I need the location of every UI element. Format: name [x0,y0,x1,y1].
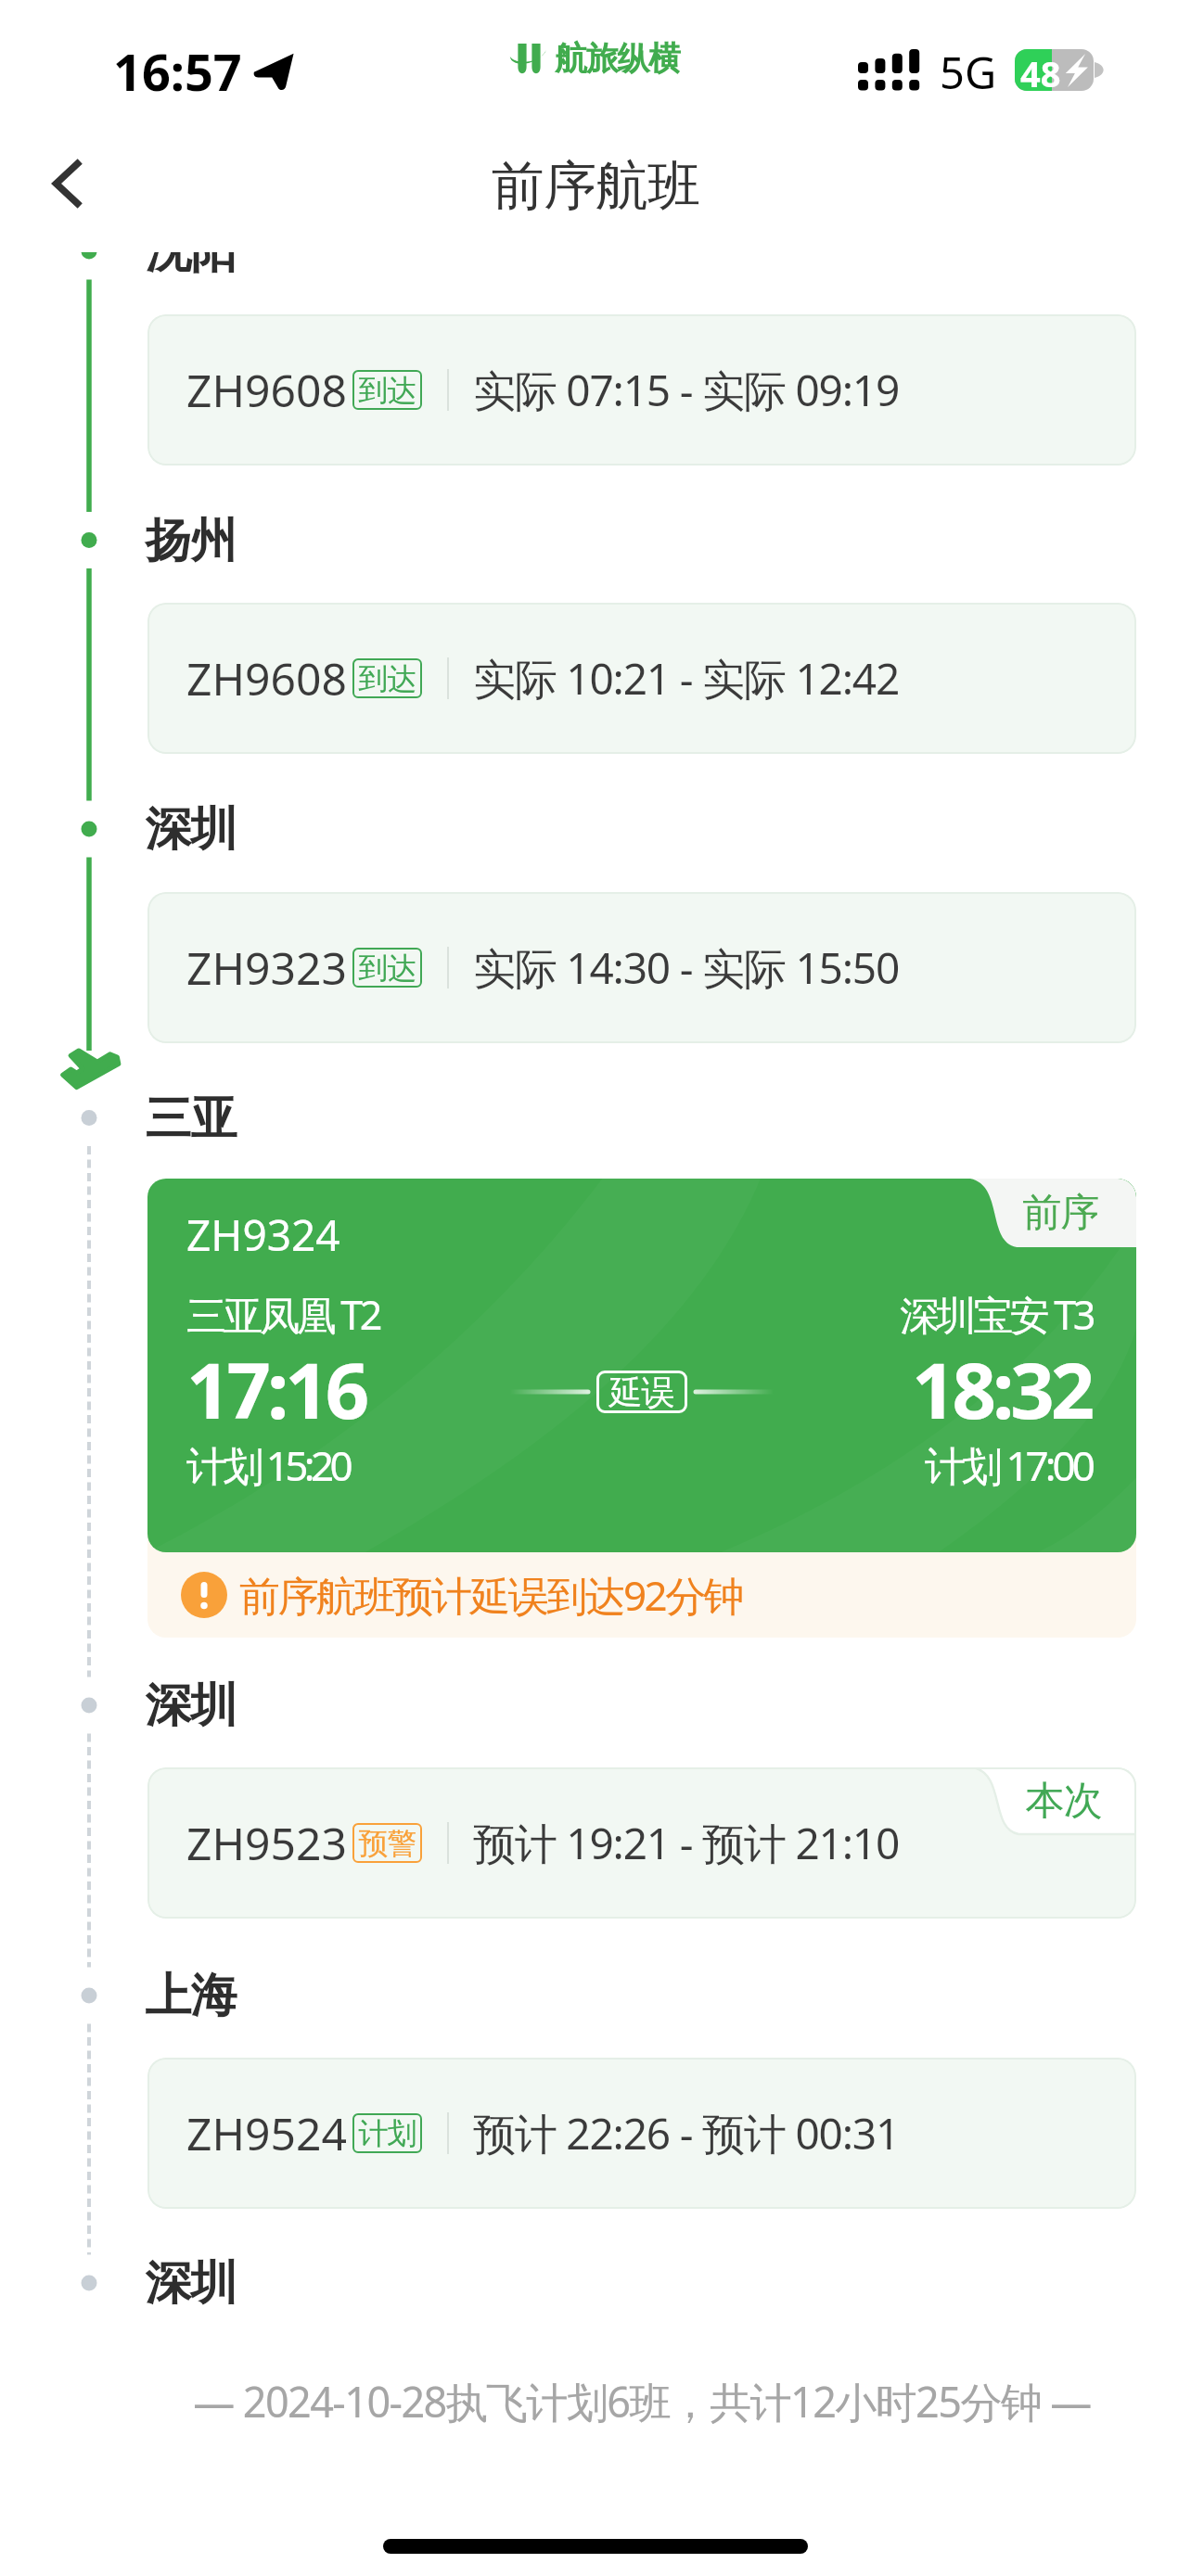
staticText: ZH9608 [186,360,347,420]
staticText: ZH9608 [186,648,347,708]
staticText: — 2024-10-28执飞计划6班，共计12小时25分钟 — [193,2373,1091,2429]
staticText: 计划 [359,2115,416,2152]
staticText: 17:16 [186,1336,366,1441]
staticText: ZH9324 [186,1205,340,1264]
staticText: ZH9523 [186,1813,347,1873]
staticText: 到达 [359,950,416,987]
staticText: 48 [1020,49,1061,91]
button[interactable]: ZH9608 [147,314,1136,465]
staticText: 前序航班 [0,153,1191,220]
staticText: 实际 10:21 - 实际 12:42 [473,649,900,708]
staticText: ZH9524 [186,2103,347,2163]
staticText: 扬州 [146,512,237,570]
staticText: 延误 [609,1371,674,1413]
staticText: 预警 [359,1825,416,1862]
button[interactable]: ZH9324 [147,1179,1136,1552]
staticText: 计划 15:20 [186,1437,350,1493]
staticText: 实际 14:30 - 实际 15:50 [473,938,900,997]
staticText: 三亚凤凰 T2 [186,1287,379,1342]
staticText: 深圳 [146,2254,237,2313]
button[interactable]: ZH9523 [147,1767,1136,1919]
staticText: 深圳 [146,1677,237,1735]
staticText: 前序 [1023,1189,1099,1238]
button[interactable]: ZH9608 [147,603,1136,754]
staticText: 到达 [359,660,416,697]
staticText: 预计 19:21 - 预计 21:10 [473,1814,900,1872]
staticText: 前序航班预计延误到达92分钟 [239,1567,742,1623]
button[interactable]: Back [11,128,122,239]
staticText: 深圳宝安 T3 [900,1287,1093,1342]
staticText: 沈阳 [146,252,237,281]
staticText: 上海 [146,1967,237,2025]
staticText: 计划 17:00 [925,1437,1092,1493]
staticText: 5G [940,43,997,102]
staticText: 预计 22:26 - 预计 00:31 [473,2104,900,2162]
staticText: ZH9323 [186,937,347,998]
staticText: 深圳 [146,800,237,859]
staticText: 实际 07:15 - 实际 09:19 [473,361,900,419]
staticText: 本次 [1026,1777,1102,1826]
staticText: 航旅纵横 [555,38,680,79]
staticText: 三亚 [146,1090,237,1148]
button[interactable]: ZH9524 [147,2058,1136,2209]
staticText: 16:57 [113,37,242,106]
button[interactable]: ZH9323 [147,892,1136,1043]
staticText: 18:32 [912,1336,1092,1441]
staticText: 到达 [359,372,416,409]
